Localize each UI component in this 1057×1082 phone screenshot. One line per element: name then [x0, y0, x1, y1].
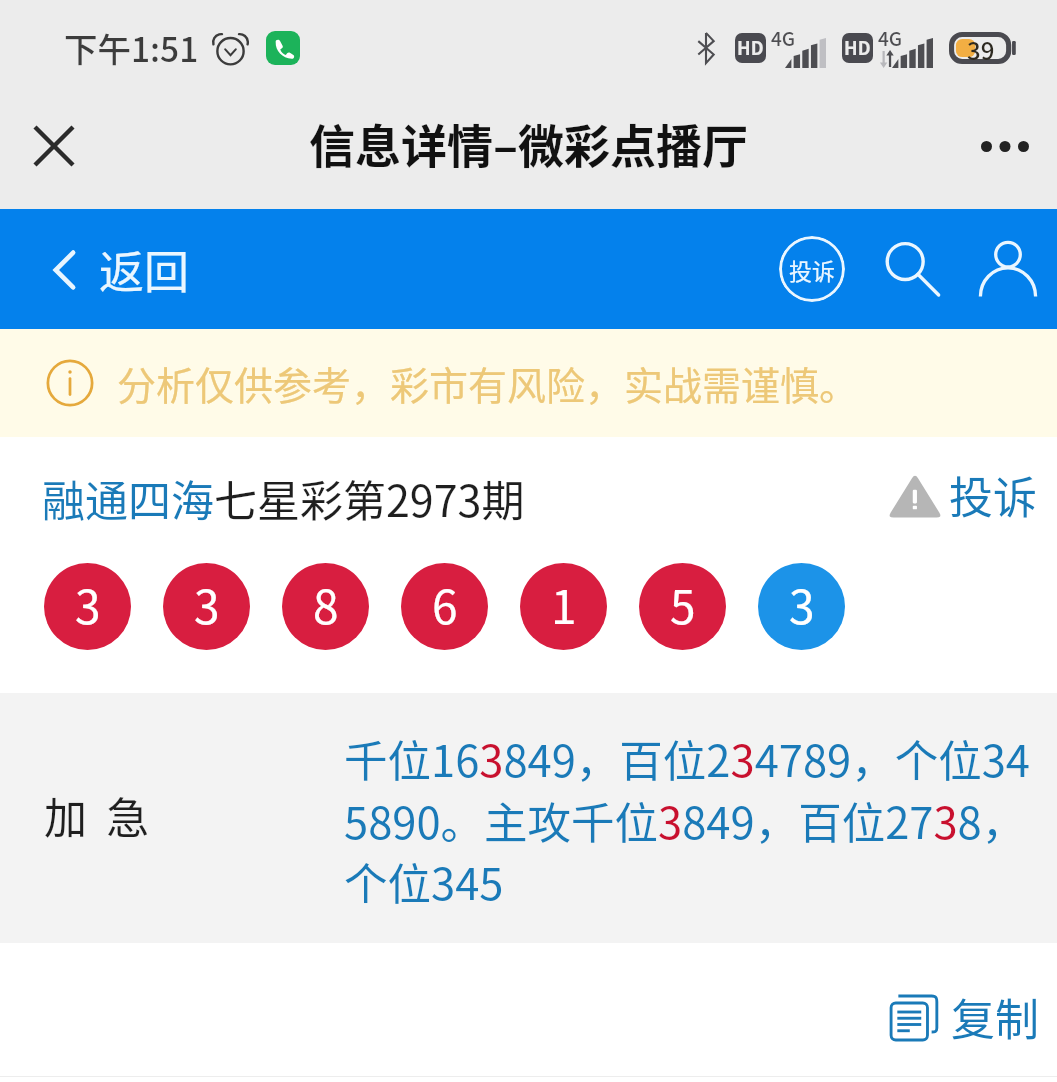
staticText: 复制: [951, 985, 1039, 1049]
staticText: 返回: [99, 237, 190, 302]
staticText: 分析仅供参考，彩市有风险，实战需谨慎。: [117, 355, 859, 411]
staticText: 5: [670, 571, 696, 638]
staticText: 4G: [878, 24, 903, 52]
staticText: 39: [967, 32, 995, 64]
button[interactable]: 复制: [889, 985, 1057, 1049]
staticText: 融通四海七星彩第2973期: [42, 467, 525, 529]
button[interactable]: Search: [879, 236, 945, 302]
button[interactable]: 投诉: [887, 463, 1057, 527]
button[interactable]: Profile: [975, 236, 1041, 302]
staticText: 1: [551, 571, 577, 638]
staticText: 加 急: [44, 784, 150, 846]
staticText: 4G: [771, 24, 796, 52]
staticText: 下午1:51: [64, 23, 199, 72]
staticText: 3: [789, 571, 815, 638]
staticText: 8: [313, 571, 339, 638]
staticText: 信息详情–微彩点播厅: [309, 110, 749, 177]
staticText: 投诉: [789, 253, 835, 286]
staticText: 3: [194, 571, 220, 638]
button[interactable]: More options: [967, 108, 1043, 184]
button[interactable]: Close: [18, 110, 90, 182]
staticText: 3: [75, 571, 101, 638]
staticText: 千位163849，百位234789，个位34 5890。主攻千位3849，百位2…: [344, 727, 1030, 912]
button[interactable]: 返回: [0, 237, 208, 302]
staticText: HD: [844, 34, 871, 60]
button[interactable]: 投诉: [779, 236, 845, 302]
staticText: 投诉: [949, 463, 1037, 527]
staticText: 6: [432, 571, 458, 638]
staticText: HD: [737, 34, 764, 60]
